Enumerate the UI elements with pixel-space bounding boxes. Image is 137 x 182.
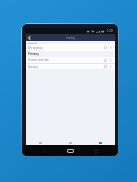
button[interactable]: Profile — [85, 138, 115, 146]
button[interactable]: Back — [40, 147, 48, 155]
staticText: Privacy — [28, 52, 39, 56]
button[interactable]: On startup — [26, 44, 115, 51]
button[interactable]: Recent apps — [92, 147, 100, 155]
button[interactable]: Items — [55, 138, 85, 146]
button[interactable]: Screen lock idle — [26, 57, 115, 63]
staticText: Screen lock idle — [28, 58, 49, 62]
button[interactable]: Navigate back — [26, 34, 33, 41]
staticText: Security — [28, 41, 38, 44]
staticText: Backup — [28, 65, 38, 69]
staticText: 1:20 — [107, 29, 113, 33]
button[interactable]: Backup — [26, 64, 115, 69]
button[interactable]: Home — [66, 146, 75, 155]
button[interactable]: Home — [26, 138, 55, 146]
staticText: Config — [66, 36, 75, 40]
staticText: On startup — [28, 46, 43, 50]
